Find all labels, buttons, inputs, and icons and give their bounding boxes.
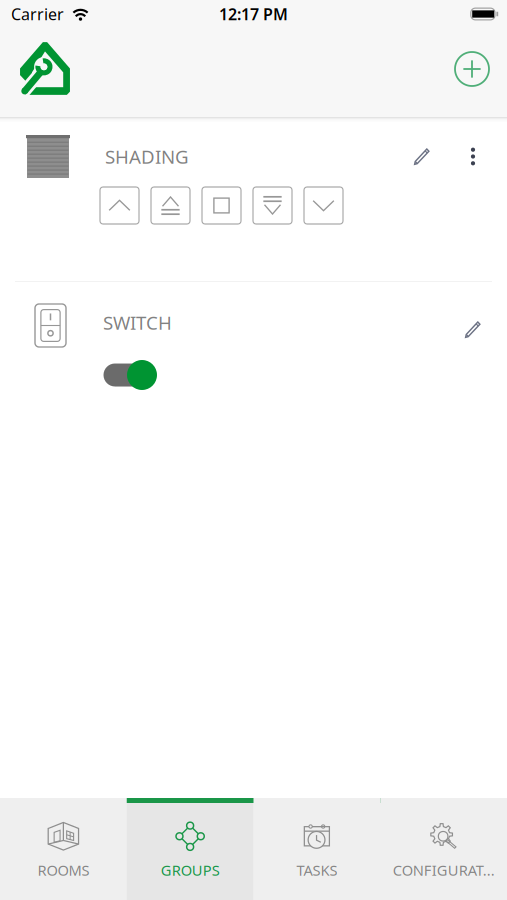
button[interactable]: CONFIGURAT...: [380, 798, 507, 900]
button[interactable]: Add group: [454, 28, 507, 117]
button[interactable]: Edit switch: [455, 303, 491, 348]
button[interactable]: Open fully: [100, 187, 139, 224]
button[interactable]: ROOMS: [0, 798, 127, 900]
button[interactable]: TASKS: [253, 798, 380, 900]
staticText: Carrier: [11, 3, 64, 25]
button[interactable]: Switch, on: [104, 360, 157, 390]
button[interactable]: Edit shading: [404, 138, 455, 175]
button[interactable]: Close one step: [253, 187, 292, 224]
staticText: SHADING: [105, 144, 189, 169]
button[interactable]: Stop: [202, 187, 241, 224]
staticText: GROUPS: [161, 860, 220, 880]
button[interactable]: GROUPS: [127, 798, 254, 900]
button[interactable]: Open one step: [151, 187, 190, 224]
button[interactable]: Close fully: [304, 187, 343, 224]
staticText: SWITCH: [103, 310, 172, 335]
staticText: TASKS: [296, 860, 337, 880]
staticText: ROOMS: [37, 860, 89, 880]
button[interactable]: More options: [455, 137, 491, 176]
button[interactable]: Home: [0, 28, 71, 117]
staticText: 12:17 PM: [219, 3, 288, 25]
staticText: CONFIGURAT...: [393, 860, 495, 880]
